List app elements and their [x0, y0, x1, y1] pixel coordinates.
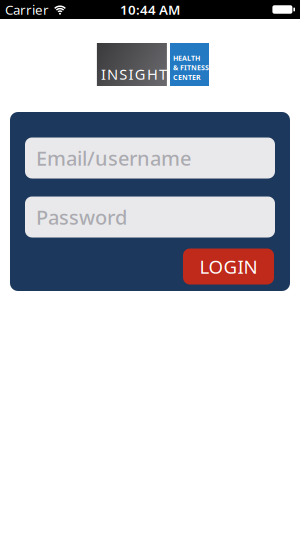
staticText: & FITNESS: [173, 63, 209, 72]
staticText: CENTER: [173, 72, 201, 82]
staticText: LOGIN: [199, 254, 257, 279]
staticText: 10:44 AM: [120, 1, 180, 18]
staticText: I: [101, 64, 106, 84]
staticText: HEALTH: [173, 53, 200, 63]
staticText: T: [159, 64, 167, 84]
staticText: S: [119, 64, 127, 84]
button[interactable]: LOGIN: [183, 248, 274, 284]
staticText: Carrier: [5, 1, 49, 18]
button[interactable]: Email/username: [25, 137, 275, 178]
staticText: I: [128, 64, 133, 84]
button[interactable]: Password: [25, 196, 275, 237]
staticText: H: [147, 64, 158, 84]
staticText: N: [107, 64, 118, 84]
staticText: Email/username: [36, 145, 191, 171]
staticText: G: [135, 64, 146, 84]
staticText: Password: [36, 204, 127, 230]
